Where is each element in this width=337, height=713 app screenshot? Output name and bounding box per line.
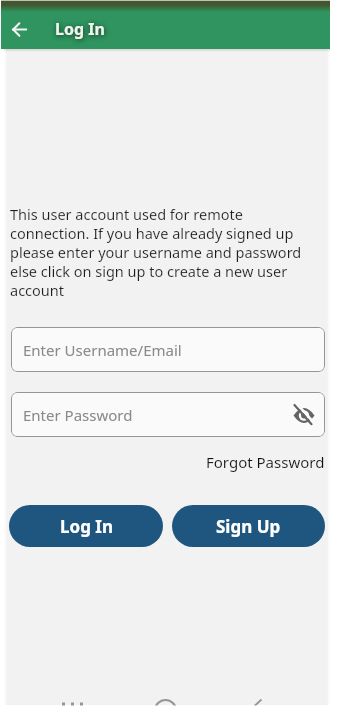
staticText: Enter Username/Email (23, 340, 182, 360)
staticText: Forgot Password (206, 452, 325, 472)
button[interactable] (3, 13, 36, 46)
button[interactable]: Forgot Password (200, 449, 330, 475)
staticText: Sign Up (216, 515, 281, 538)
staticText: This user account used for remote connec… (10, 204, 302, 300)
button[interactable]: Sign Up (172, 505, 325, 547)
button[interactable]: Log In (9, 505, 163, 547)
staticText: Log In (55, 18, 105, 40)
button[interactable]: Enter Username/Email (11, 327, 325, 372)
staticText: Enter Password (23, 405, 133, 425)
staticText: Log In (60, 515, 113, 538)
button[interactable]: Enter Password (11, 392, 325, 437)
button[interactable] (292, 403, 316, 427)
